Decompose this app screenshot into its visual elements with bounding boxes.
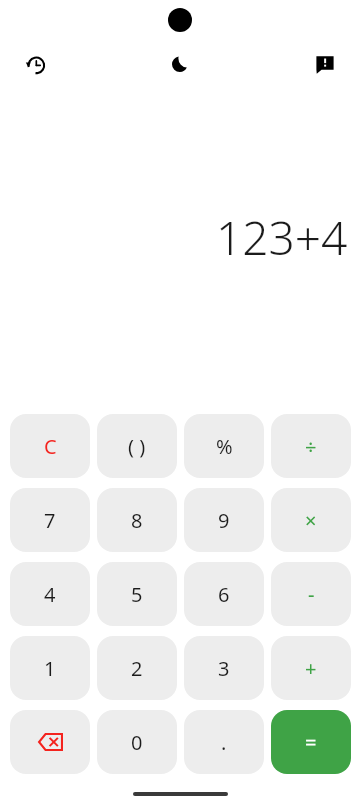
button[interactable]: ( ) [97,414,177,478]
staticText: 123+4 [216,206,348,269]
staticText: . [221,729,227,756]
staticText: 6 [218,581,230,608]
staticText: 4 [44,581,56,608]
staticText: 8 [131,507,143,534]
button[interactable]: 8 [97,488,177,552]
staticText: × [305,507,317,534]
staticText: 5 [131,581,143,608]
staticText: = [305,729,317,756]
button[interactable]: Send feedback [303,42,347,86]
staticText: 9 [218,507,230,534]
button[interactable]: Dark mode [158,42,202,86]
button[interactable]: ÷ [271,414,351,478]
button[interactable]: Backspace [10,710,90,774]
button[interactable]: . [184,710,264,774]
staticText: % [216,433,233,460]
button[interactable]: 5 [97,562,177,626]
staticText: 7 [44,507,56,534]
staticText: 0 [131,729,143,756]
button[interactable]: 6 [184,562,264,626]
button[interactable]: C [10,414,90,478]
staticText: + [305,655,317,682]
button[interactable]: 9 [184,488,264,552]
button[interactable]: + [271,636,351,700]
staticText: - [308,581,315,608]
button[interactable]: 7 [10,488,90,552]
button[interactable]: 3 [184,636,264,700]
button[interactable]: 1 [10,636,90,700]
staticText: C [44,433,57,460]
button[interactable]: History [13,42,57,86]
button[interactable]: × [271,488,351,552]
button[interactable]: % [184,414,264,478]
staticText: 2 [131,655,143,682]
staticText: 1 [44,655,56,682]
staticText: ( ) [128,433,146,460]
button[interactable]: 0 [97,710,177,774]
button[interactable]: = [271,710,351,774]
staticText: 3 [218,655,230,682]
staticText: ÷ [305,433,317,460]
button[interactable]: 4 [10,562,90,626]
button[interactable]: 2 [97,636,177,700]
button[interactable]: - [271,562,351,626]
